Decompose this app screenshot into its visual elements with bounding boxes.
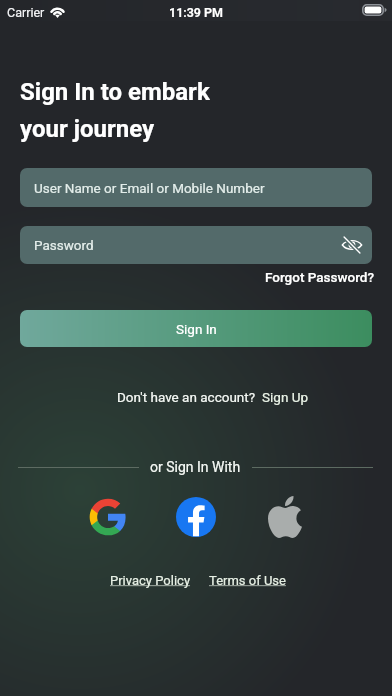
staticText: Don't have an account? bbox=[117, 389, 256, 405]
staticText: User Name or Email or Mobile Number bbox=[34, 180, 265, 196]
button[interactable]: User Name or Email or Mobile Number bbox=[20, 168, 372, 207]
button[interactable]: Sign in with Google bbox=[86, 495, 130, 539]
button[interactable]: Sign in with Apple bbox=[263, 495, 307, 539]
staticText: or Sign In With bbox=[150, 459, 241, 475]
staticText: Carrier bbox=[7, 5, 45, 20]
staticText: Sign In bbox=[176, 321, 217, 337]
staticText: 11:39 PM bbox=[169, 5, 224, 20]
button[interactable]: Sign in with Facebook bbox=[174, 495, 218, 539]
button[interactable]: Show password bbox=[338, 231, 366, 259]
staticText: Password bbox=[34, 237, 94, 253]
button[interactable]: Sign In bbox=[20, 310, 372, 347]
button[interactable]: Privacy Policy bbox=[110, 573, 191, 588]
button[interactable]: Forgot Password? bbox=[260, 266, 379, 288]
staticText: Terms of Use bbox=[209, 573, 286, 588]
button[interactable]: Terms of Use bbox=[209, 573, 286, 588]
staticText: Forgot Password? bbox=[265, 269, 374, 285]
staticText: Privacy Policy bbox=[110, 573, 191, 588]
staticText: Sign In to embark bbox=[20, 78, 210, 106]
button[interactable]: Sign Up bbox=[262, 389, 309, 405]
button[interactable]: Password bbox=[20, 226, 372, 264]
staticText: your journey bbox=[20, 115, 155, 143]
staticText: Sign Up bbox=[262, 389, 309, 405]
